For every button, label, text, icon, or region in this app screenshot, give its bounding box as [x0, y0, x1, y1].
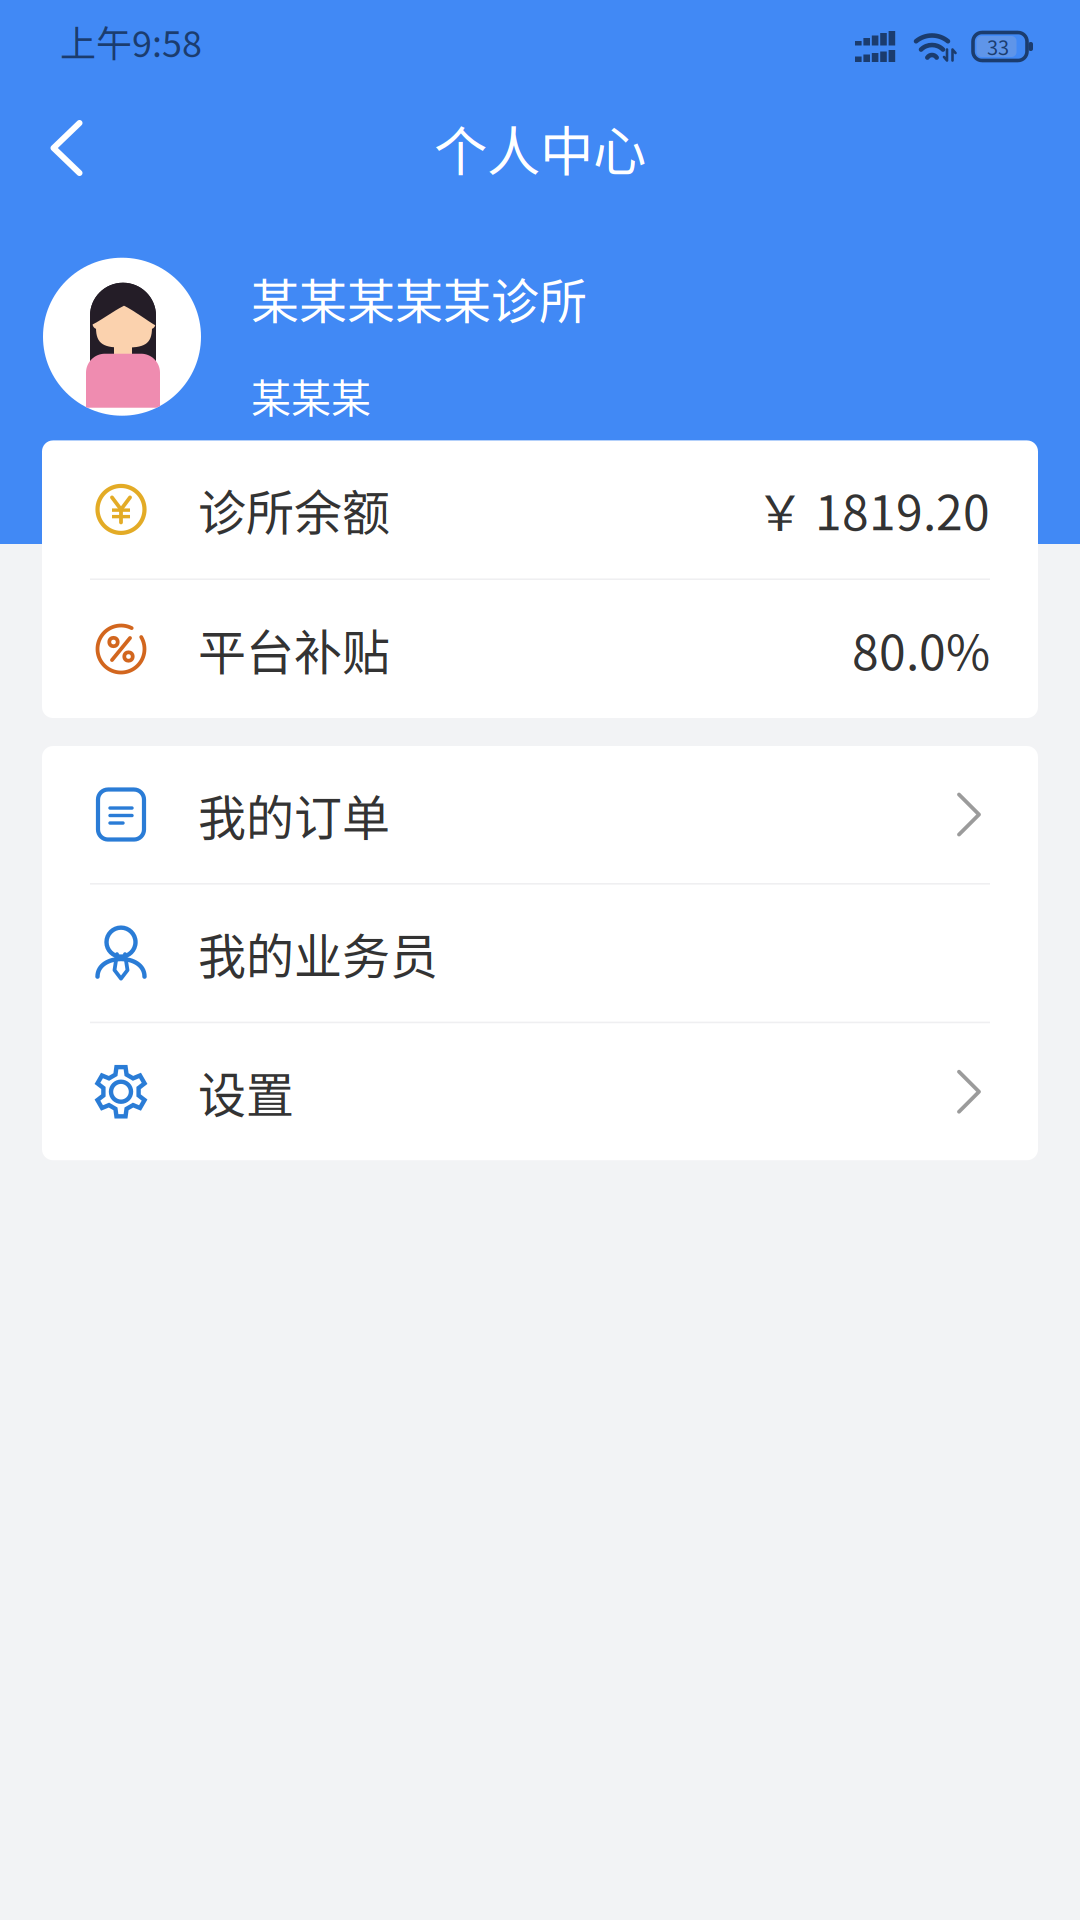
staticText: 诊所余额 — [198, 475, 390, 544]
staticText: 个人中心 — [434, 109, 646, 187]
staticText: ￥ 1819.20 — [756, 475, 990, 544]
staticText: 上午9:58 — [60, 15, 202, 67]
staticText: 某某某 — [251, 366, 371, 424]
staticText: 平台补贴 — [198, 614, 390, 684]
staticText: 设置 — [198, 1057, 294, 1126]
staticText: 33 — [987, 32, 1009, 61]
staticText: 80.0% — [852, 614, 990, 684]
staticText: 我的订单 — [198, 780, 390, 849]
button[interactable]: 设置 — [42, 1023, 1038, 1160]
button[interactable]: 我的业务员 — [42, 885, 1038, 1022]
button[interactable]: 我的订单 — [42, 746, 1038, 883]
button[interactable]: Back — [0, 96, 133, 200]
staticText: 某某某某某诊所 — [251, 263, 587, 332]
staticText: 我的业务员 — [198, 918, 438, 988]
